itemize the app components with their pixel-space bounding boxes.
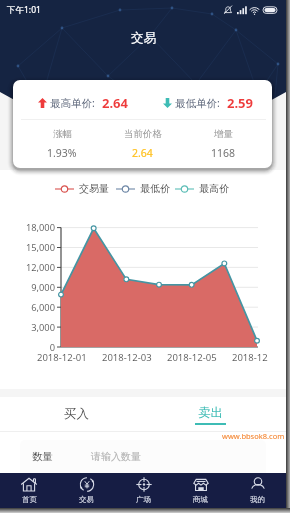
staticText: 卖出 <box>198 405 223 421</box>
button[interactable]: 首页 <box>0 473 58 508</box>
button[interactable]: 广场 <box>115 473 172 508</box>
staticText: 下午1:01 <box>7 4 41 16</box>
staticText: 2018-12-01 <box>37 351 87 364</box>
staticText: 买入 <box>64 406 89 422</box>
button[interactable]: 商城 <box>172 473 229 508</box>
staticText: 0 <box>49 341 55 354</box>
staticText: 当前价格 <box>124 128 162 140</box>
button[interactable]: 买入 <box>9 397 143 430</box>
staticText: 商城 <box>193 495 208 504</box>
staticText: 12,000 <box>25 261 55 274</box>
staticText: 首页 <box>22 495 37 504</box>
staticText: 1.93% <box>47 146 77 160</box>
staticText: 交易 <box>79 495 94 504</box>
staticText: 2018-12 <box>232 351 268 364</box>
staticText: 我的 <box>250 495 265 504</box>
staticText: www.bbsok8.com <box>222 431 285 441</box>
staticText: 2.64 <box>132 146 153 160</box>
staticText: 数量 <box>32 450 53 463</box>
staticText: 2018-12-05 <box>167 351 217 364</box>
staticText: 交易 <box>131 30 156 46</box>
staticText: 涨幅 <box>53 128 72 140</box>
staticText: 3,000 <box>31 321 55 334</box>
staticText: 18,000 <box>25 221 55 234</box>
staticText: 最高单价: <box>50 96 95 110</box>
staticText: 请输入数量 <box>91 450 141 463</box>
staticText: 2.59 <box>227 94 253 112</box>
button[interactable]: 交易 <box>58 473 115 508</box>
staticText: 最低单价: <box>175 96 220 110</box>
staticText: 交易量 <box>79 182 109 195</box>
staticText: 最高价 <box>199 182 229 195</box>
staticText: 广场 <box>136 495 151 504</box>
button[interactable]: 我的 <box>229 473 286 508</box>
staticText: 9,000 <box>31 281 55 294</box>
button[interactable]: 卖出 <box>143 397 277 430</box>
staticText: 增量 <box>214 128 233 140</box>
staticText: 最低价 <box>140 182 170 195</box>
staticText: 1168 <box>211 146 236 160</box>
staticText: 2.64 <box>102 94 128 112</box>
staticText: 2018-12-03 <box>102 351 152 364</box>
staticText: 15,000 <box>25 241 55 254</box>
staticText: 6,000 <box>31 301 55 314</box>
